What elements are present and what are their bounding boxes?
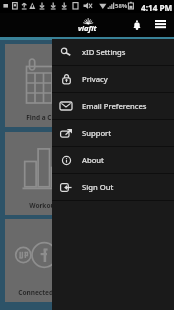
staticText: viafit [78,23,97,33]
staticText: xID Settings [82,47,126,57]
button[interactable]: Progress [89,132,169,215]
button[interactable]: Privacy [52,66,174,92]
staticText: Find a Class [26,113,64,122]
staticText: Email Preferences [82,101,147,111]
button[interactable]: About [52,147,174,173]
staticText: Support [82,128,112,138]
staticText: Gyms [120,113,139,122]
staticText: 4:14 PM [141,2,173,13]
button[interactable]: xID Settings [52,39,174,65]
button[interactable]: Sign Out [52,174,174,200]
button[interactable]: Find a Class [5,44,84,127]
button[interactable]: Open navigation menu [149,12,171,36]
button[interactable]: Connected Apps [5,219,84,302]
button[interactable]: Notifications [126,13,148,37]
staticText: About [82,155,104,165]
button[interactable]: Workouts [5,132,84,215]
staticText: Workouts [29,201,61,210]
button[interactable]: Email Preferences [52,93,174,119]
button[interactable]: Support [52,120,174,146]
staticText: Sign Out [82,182,114,192]
staticText: 58% [115,2,128,10]
button[interactable]: Gyms [89,44,169,127]
staticText: Connected Apps [18,288,71,297]
staticText: Privacy [82,74,108,84]
